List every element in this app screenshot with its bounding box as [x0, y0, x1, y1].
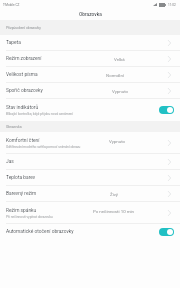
staticText: Obrazovka	[6, 125, 22, 129]
button[interactable]: Tapeta	[0, 35, 180, 51]
staticText: Teplota barev	[6, 175, 36, 181]
button[interactable]: Stav indikátorů	[0, 99, 180, 121]
button[interactable]: Velikost písma	[0, 67, 180, 83]
staticText: Vypnuto	[112, 89, 129, 94]
staticText: Barevný režim	[6, 191, 37, 197]
button[interactable]: Režim spánku	[0, 202, 180, 224]
button[interactable]: Spořič obrazovky	[0, 83, 180, 99]
staticText: T-Mobile CZ	[3, 3, 20, 7]
staticText: Komfortní čtení	[6, 138, 40, 144]
button[interactable]: Barevný režim	[0, 186, 180, 202]
staticText: Velikost písma	[6, 72, 38, 78]
staticText: Živý	[110, 192, 118, 197]
staticText: Velká	[114, 57, 125, 62]
staticText: Obrazovka	[79, 12, 102, 18]
staticText: Stav indikátorů	[6, 105, 39, 111]
button[interactable]: Teplota barev	[0, 170, 180, 186]
staticText: Tapeta	[6, 40, 21, 46]
staticText: Odfiltrování modrého světla pomocí snímá…	[6, 145, 81, 149]
staticText: 11:02	[168, 3, 176, 7]
staticText: Režim zobrazení	[6, 56, 42, 62]
staticText: Automatické otočení obrazovky	[6, 229, 74, 235]
staticText: Režim spánku	[6, 208, 37, 214]
staticText: Přizpůsobení obrazovky	[6, 26, 41, 30]
staticText: Po nečinnosti 10 min	[93, 209, 135, 214]
staticText: Blikající kontrolka, když přijdou nová o…	[6, 112, 73, 116]
staticText: Normální	[106, 73, 124, 78]
button[interactable]: Automatické otočení obrazovky	[0, 224, 180, 240]
button[interactable]: Komfortní čtení	[0, 132, 180, 154]
staticText: Při nečinnosti vypínat obrazovku	[6, 215, 53, 219]
staticText: Jas	[6, 159, 14, 165]
staticText: Spořič obrazovky	[6, 88, 43, 94]
staticText: Vypnuto	[109, 139, 126, 144]
button[interactable]: Režim zobrazení	[0, 51, 180, 67]
button[interactable]: Jas	[0, 154, 180, 170]
